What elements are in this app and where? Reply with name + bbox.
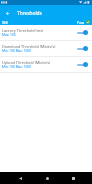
staticText: Max: 100 [2,33,16,37]
staticText: Min: 100 Max: 1000 [2,65,32,69]
staticText: Min: 100 Max: 1000 [2,49,32,53]
staticText: Wifi [2,20,9,25]
button[interactable]: Download Threshold (Mbits/s) [0,41,92,56]
button[interactable]: Back [14,172,26,184]
button[interactable]: Home [41,172,53,184]
staticText: Latency Threshold (ms) [2,28,44,33]
staticText: Upload Threshold (Mbits/s) [2,60,51,65]
button[interactable]: Navigate up [1,7,13,19]
staticText: Thresholds [17,10,42,17]
button[interactable]: Toggle [77,61,88,68]
button[interactable]: Recent apps [67,172,79,184]
button[interactable]: Toggle [77,45,88,52]
staticText: Download Threshold (Mbits/s) [2,44,56,49]
button[interactable]: Latency Threshold (ms) [0,25,92,40]
staticText: Pass [77,20,85,25]
button[interactable]: Upload Threshold (Mbits/s) [0,57,92,72]
button[interactable]: Toggle [77,29,88,36]
